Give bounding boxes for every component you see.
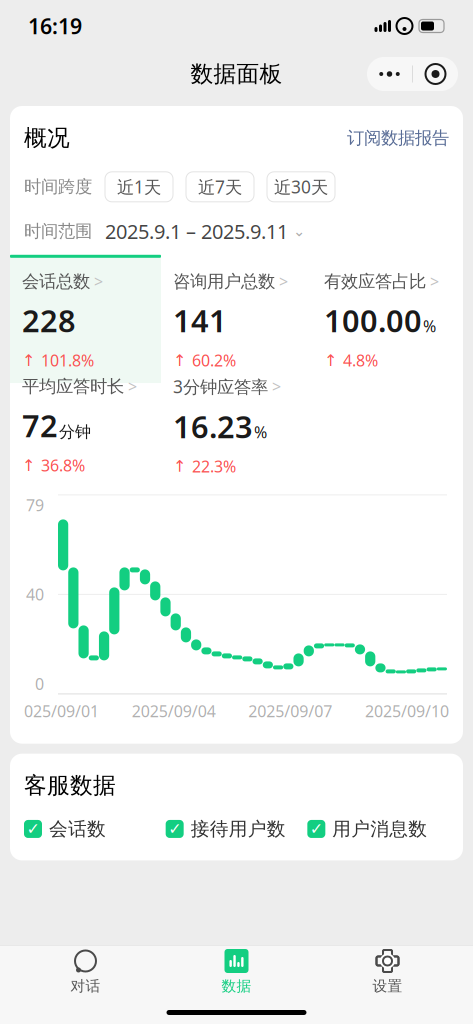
button[interactable]: 近1天 (105, 172, 173, 202)
button[interactable]: 会话总数 (10, 255, 161, 383)
button[interactable]: 订阅数据报告 (347, 127, 449, 149)
staticText: ✓ (26, 820, 39, 838)
staticText: ↑ (173, 457, 186, 475)
staticText: 近7天 (198, 175, 242, 198)
staticText: > (430, 271, 439, 292)
staticText: 时间范围 (24, 220, 92, 242)
staticText: 141 (173, 300, 227, 341)
staticText: 近1天 (117, 175, 161, 198)
staticText: > (279, 271, 288, 292)
staticText: 16.23 (173, 406, 253, 447)
staticText: 用户消息数 (332, 817, 427, 840)
staticText: 4.8% (343, 350, 378, 371)
staticText: 72 (22, 405, 58, 446)
button[interactable]: ✓ (166, 817, 307, 840)
staticText: 2025/09/04 (132, 700, 216, 722)
staticText: 100.00 (324, 300, 422, 341)
staticText: 3分钟应答率 (173, 375, 268, 398)
staticText: 0 (35, 673, 44, 694)
staticText: > (94, 271, 103, 292)
staticText: 2025/09/07 (248, 700, 332, 722)
staticText: 2025/09/10 (365, 700, 449, 722)
staticText: 22.3% (192, 456, 236, 477)
staticText: 025/09/01 (24, 700, 99, 722)
button[interactable]: 设置 (312, 943, 463, 999)
staticText: ↑ (173, 351, 186, 369)
button[interactable]: 时间范围 (10, 202, 463, 244)
staticText: 101.8% (41, 350, 94, 371)
staticText: 有效应答占比 (324, 271, 426, 292)
button[interactable]: 数据 (161, 943, 312, 999)
button[interactable]: ✓ (24, 817, 166, 840)
staticText: 2025.9.1 – 2025.9.11 (105, 218, 288, 244)
button[interactable]: 平均应答时长 (10, 360, 161, 488)
staticText: 60.2% (192, 350, 236, 371)
staticText: 会话数 (49, 817, 106, 840)
staticText: ✓ (168, 820, 181, 838)
staticText: % (254, 421, 267, 443)
button[interactable]: ✓ (307, 817, 449, 840)
staticText: 分钟 (59, 422, 91, 442)
button[interactable]: 近7天 (186, 172, 254, 202)
button[interactable]: 咨询用户总数 (161, 255, 312, 383)
staticText: 订阅数据报告 (347, 127, 449, 149)
staticText: > (128, 376, 137, 397)
staticText: 16:19 (28, 12, 82, 40)
button[interactable]: 有效应答占比 (312, 255, 463, 383)
staticText: 近30天 (274, 175, 328, 198)
staticText: 平均应答时长 (22, 376, 124, 397)
staticText: 咨询用户总数 (173, 271, 275, 292)
staticText: 数据面板 (190, 60, 282, 88)
staticText: ↑ (22, 456, 35, 474)
staticText: ↑ (324, 351, 337, 369)
staticText: 数据 (221, 977, 251, 995)
staticText: 概况 (24, 124, 70, 152)
staticText: ✓ (310, 820, 323, 838)
button[interactable]: 近30天 (267, 172, 335, 202)
staticText: 客服数据 (24, 772, 116, 799)
staticText: 对话 (70, 977, 100, 995)
button[interactable]: Close (413, 57, 458, 91)
staticText: 40 (26, 584, 44, 605)
staticText: 接待用户数 (191, 817, 286, 840)
staticText: 设置 (372, 977, 402, 995)
staticText: 会话总数 (22, 271, 90, 292)
staticText: % (423, 315, 436, 337)
staticText: 时间跨度 (24, 176, 92, 197)
staticText: ↑ (22, 351, 35, 369)
staticText: 36.8% (41, 455, 85, 476)
button[interactable]: 3分钟应答率 (161, 359, 312, 489)
staticText: 228 (22, 300, 76, 341)
button[interactable]: More (367, 57, 412, 91)
staticText: 79 (26, 494, 44, 516)
button[interactable]: 对话 (10, 943, 161, 999)
staticText: ⌄ (293, 223, 305, 239)
staticText: > (272, 376, 281, 397)
